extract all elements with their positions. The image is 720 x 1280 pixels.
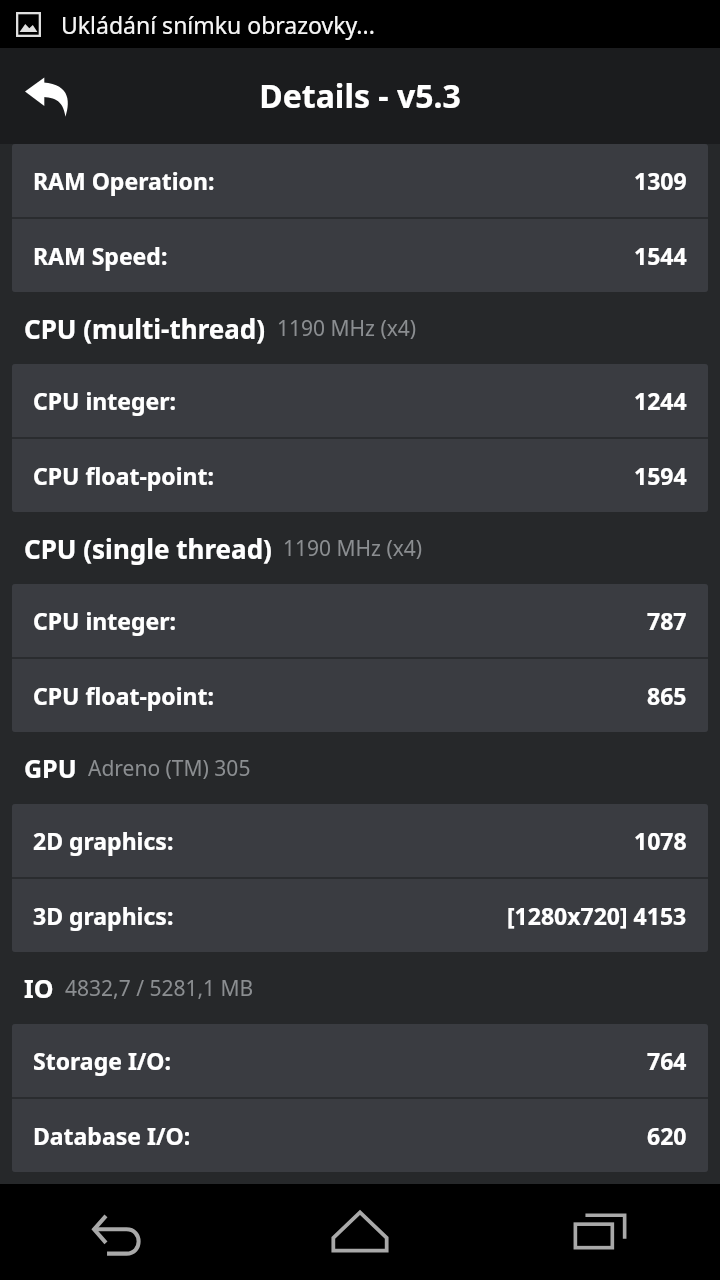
button[interactable]: 2D graphics:: [12, 804, 708, 877]
staticText: CPU integer:: [33, 385, 176, 416]
button[interactable]: Home: [240, 1184, 480, 1280]
button[interactable]: RAM Operation:: [12, 144, 708, 217]
staticText: Details - v5.3: [259, 74, 461, 118]
staticText: 764: [647, 1045, 687, 1076]
staticText: [1280x720] 4153: [507, 900, 687, 931]
staticText: 787: [647, 605, 687, 636]
button[interactable]: CPU integer:: [12, 584, 708, 657]
staticText: 865: [647, 680, 687, 711]
button[interactable]: Recent apps: [480, 1184, 720, 1280]
button[interactable]: CPU float-point:: [12, 659, 708, 732]
button[interactable]: RAM Speed:: [12, 219, 708, 292]
staticText: 1190 MHz (x4): [283, 534, 423, 563]
staticText: GPU: [24, 751, 77, 785]
staticText: Ukládání snímku obrazovky...: [61, 9, 375, 40]
button[interactable]: 3D graphics:: [12, 879, 708, 952]
staticText: 1244: [634, 385, 687, 416]
button[interactable]: Database I/O:: [12, 1099, 708, 1172]
staticText: CPU float-point:: [33, 460, 215, 491]
staticText: 1309: [634, 165, 687, 196]
button[interactable]: Back: [0, 48, 96, 144]
staticText: CPU float-point:: [33, 680, 215, 711]
staticText: 1190 MHz (x4): [277, 314, 417, 343]
button[interactable]: CPU integer:: [12, 364, 708, 437]
staticText: RAM Operation:: [33, 165, 215, 196]
staticText: 1078: [634, 825, 687, 856]
staticText: CPU integer:: [33, 605, 176, 636]
button[interactable]: Back: [0, 1184, 240, 1280]
staticText: Database I/O:: [33, 1120, 191, 1151]
button[interactable]: Storage I/O:: [12, 1024, 708, 1097]
staticText: CPU (single thread): [24, 531, 272, 566]
button[interactable]: CPU float-point:: [12, 439, 708, 512]
staticText: IO: [24, 971, 54, 1005]
staticText: 3D graphics:: [33, 900, 174, 931]
staticText: 2D graphics:: [33, 825, 174, 856]
staticText: 1594: [634, 460, 687, 491]
staticText: Storage I/O:: [33, 1045, 172, 1076]
staticText: Adreno (TM) 305: [88, 754, 251, 783]
staticText: 620: [647, 1120, 687, 1151]
staticText: RAM Speed:: [33, 240, 168, 271]
staticText: CPU (multi-thread): [24, 311, 266, 346]
staticText: 4832,7 / 5281,1 MB: [65, 974, 254, 1003]
staticText: 1544: [634, 240, 687, 271]
